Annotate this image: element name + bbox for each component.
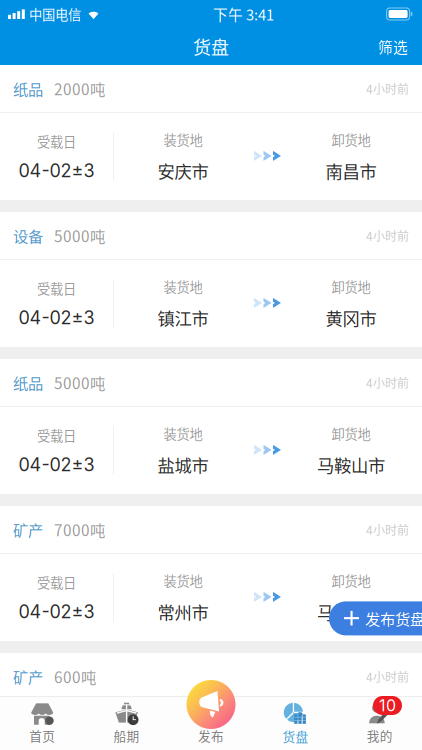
button[interactable]: 发布货盘 — [329, 601, 422, 635]
staticText: 黄冈市 — [325, 305, 376, 330]
staticText: 4小时前 — [366, 374, 409, 391]
staticText: 安庆市 — [157, 158, 208, 183]
staticText: 马鞍山市 — [317, 452, 385, 477]
staticText: 盐城市 — [157, 452, 208, 477]
staticText: 4小时前 — [366, 80, 409, 97]
staticText: 卸货地 — [331, 130, 370, 149]
staticText: 我的 — [367, 726, 393, 745]
button[interactable]: 船期 — [84, 697, 169, 750]
button[interactable]: 纸品 — [0, 359, 422, 494]
staticText: 受载日 — [37, 131, 76, 151]
staticText: 装货地 — [163, 718, 202, 737]
button[interactable]: 首页 — [0, 697, 84, 750]
staticText: 矿产 — [13, 665, 43, 688]
staticText: 4小时前 — [366, 521, 409, 538]
staticText: 矿产 — [13, 518, 43, 541]
staticText: 04-02±3 — [18, 307, 94, 329]
staticText: 装货地 — [163, 277, 202, 296]
staticText: 04-02±3 — [18, 601, 94, 623]
staticText: 纸品 — [13, 77, 43, 100]
staticText: 船期 — [114, 726, 140, 745]
staticText: 装货地 — [163, 130, 202, 149]
staticText: 中国电信 — [29, 4, 81, 24]
staticText: 装货地 — [163, 424, 202, 443]
staticText: 卸货地 — [331, 277, 370, 296]
staticText: 4小时前 — [366, 227, 409, 244]
staticText: 首页 — [29, 726, 55, 745]
staticText: 卸货地 — [331, 718, 370, 737]
staticText: 受载日 — [37, 425, 76, 445]
staticText: 纸品 — [13, 371, 43, 394]
staticText: 马鞍山市 — [317, 599, 385, 624]
staticText: 2000吨 — [54, 77, 105, 100]
button[interactable]: 我的 — [338, 697, 422, 750]
button[interactable]: 矿产 — [0, 653, 422, 750]
staticText: 7000吨 — [54, 518, 105, 541]
staticText: 10 — [379, 696, 396, 715]
staticText: 镇江市 — [157, 305, 208, 330]
staticText: 筛选 — [378, 36, 408, 57]
staticText: 5000吨 — [54, 224, 105, 247]
staticText: 卸货地 — [331, 571, 370, 590]
button[interactable]: 矿产 — [0, 506, 422, 641]
staticText: 下午 3:41 — [213, 3, 274, 25]
staticText: 04-02±3 — [18, 454, 94, 476]
button[interactable]: 设备 — [0, 212, 422, 347]
button[interactable]: 发布 — [169, 697, 253, 750]
staticText: 装货地 — [163, 571, 202, 590]
button[interactable]: 纸品 — [0, 65, 422, 200]
staticText: 600吨 — [54, 665, 96, 688]
staticText: 货盘 — [282, 727, 308, 745]
staticText: 南昌市 — [325, 158, 376, 183]
staticText: 受载日 — [37, 719, 76, 739]
staticText: 受载日 — [37, 278, 76, 298]
staticText: 货盘 — [193, 33, 229, 60]
staticText: 受载日 — [37, 572, 76, 592]
staticText: 设备 — [13, 224, 43, 247]
staticText: 发布 — [198, 726, 224, 745]
staticText: 4小时前 — [366, 668, 409, 685]
button[interactable]: 货盘 — [253, 697, 338, 750]
button[interactable]: 筛选 — [364, 28, 422, 65]
staticText: 5000吨 — [54, 371, 105, 394]
staticText: 04-02±3 — [18, 160, 94, 182]
staticText: 常州市 — [157, 599, 208, 624]
staticText: 卸货地 — [331, 424, 370, 443]
staticText: 发布货盘 — [365, 607, 422, 629]
